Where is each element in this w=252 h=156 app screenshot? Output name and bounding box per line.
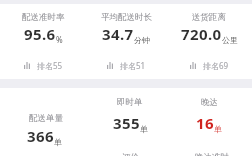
staticText: 95.6: [24, 24, 56, 44]
staticText: 单: [214, 124, 222, 134]
staticText: 720.0: [181, 24, 222, 44]
staticText: 366: [27, 126, 54, 146]
staticText: 355: [113, 113, 140, 133]
button[interactable]: [88, 88, 172, 142]
staticText: 34.7: [102, 24, 134, 44]
button[interactable]: [84, 6, 168, 74]
staticText: 单: [140, 124, 148, 134]
staticText: 排名69: [203, 60, 229, 71]
staticText: 即时单: [117, 97, 143, 108]
staticText: 公里: [222, 35, 238, 45]
staticText: 排名55: [37, 60, 63, 71]
staticText: 晚达准时: [195, 152, 229, 156]
button[interactable]: [0, 88, 84, 156]
staticText: 配送单量: [29, 113, 63, 124]
staticText: 评价: [122, 152, 139, 156]
staticText: 单: [54, 137, 62, 147]
staticText: 配送准时率: [22, 12, 65, 23]
button[interactable]: [167, 88, 251, 142]
staticText: 排名51: [120, 60, 146, 71]
staticText: 晚达: [201, 97, 218, 108]
staticText: 分钟: [134, 35, 150, 45]
button[interactable]: [1, 6, 85, 74]
staticText: 平均配送时长: [101, 12, 152, 23]
staticText: 送货距离: [192, 12, 226, 23]
staticText: %: [56, 34, 63, 45]
staticText: 16: [196, 113, 214, 133]
button[interactable]: [167, 6, 251, 74]
